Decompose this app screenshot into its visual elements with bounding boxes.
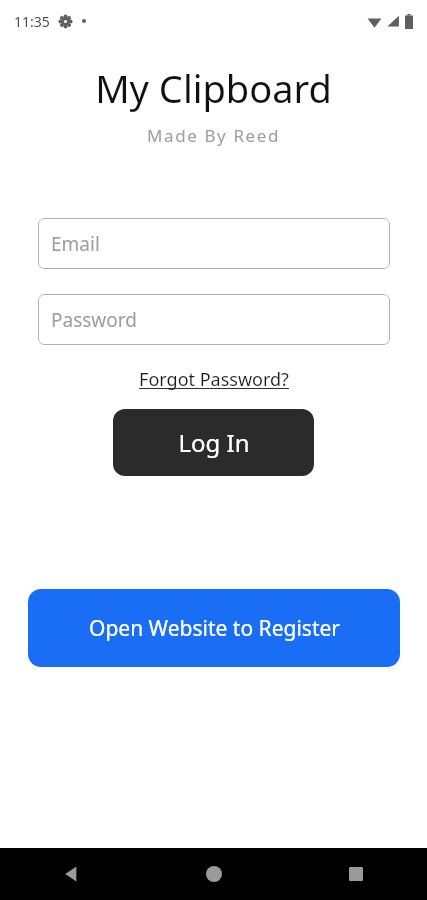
staticText: Log In <box>178 426 250 459</box>
button[interactable]: Open Website to Register <box>28 589 400 667</box>
staticText: Password <box>51 307 137 333</box>
staticText: 11:35 <box>14 12 50 31</box>
button[interactable]: Recent apps <box>285 848 427 900</box>
staticText: Open Website to Register <box>89 614 340 643</box>
staticText: Made By Reed <box>0 124 427 147</box>
button[interactable]: Log In <box>113 409 314 476</box>
staticText: Forgot Password? <box>139 367 289 392</box>
button[interactable]: Email <box>38 218 390 269</box>
staticText: My Clipboard <box>0 62 427 114</box>
button[interactable]: Back <box>0 848 143 900</box>
button[interactable]: Forgot Password? <box>133 365 295 394</box>
button[interactable]: Password <box>38 294 390 345</box>
staticText: Email <box>51 231 100 257</box>
button[interactable]: Home <box>143 848 285 900</box>
